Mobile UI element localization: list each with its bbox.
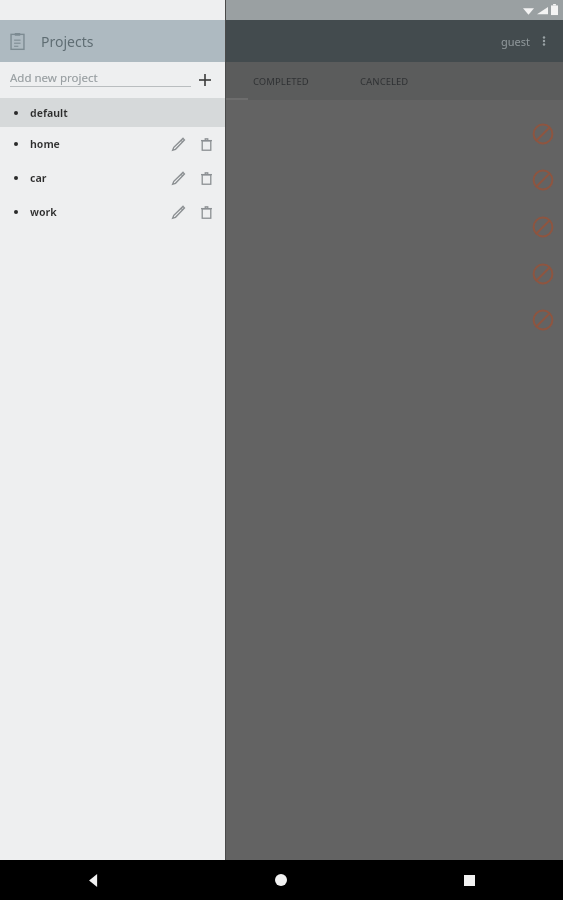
button[interactable]: Delete work	[193, 199, 219, 225]
button[interactable]: Send	[521, 855, 555, 889]
button[interactable]: Edit car	[165, 165, 191, 191]
button[interactable]: Delete home	[193, 131, 219, 157]
button[interactable]: Cancel task	[532, 123, 554, 145]
button[interactable]: work	[0, 195, 225, 229]
button[interactable]: CANCELED	[334, 62, 434, 100]
staticText: work	[30, 205, 57, 219]
staticText: COMPLETED	[253, 75, 309, 88]
button[interactable]: home	[0, 127, 225, 161]
button[interactable]: COMPLETED	[228, 62, 334, 100]
staticText: guest	[501, 34, 531, 49]
button[interactable]: Add project	[191, 66, 219, 94]
button[interactable]: Back	[0, 860, 187, 900]
staticText: Add new project	[10, 70, 98, 86]
staticText: Projects	[41, 32, 94, 51]
button[interactable]: More options	[531, 28, 557, 54]
button[interactable]: Cancel task	[532, 216, 554, 238]
button[interactable]: default	[0, 98, 225, 127]
staticText: default	[30, 106, 68, 120]
staticText: car	[30, 171, 47, 185]
button[interactable]: Recent apps	[375, 860, 563, 900]
button[interactable]: car	[0, 161, 225, 195]
button[interactable]: Cancel task	[532, 309, 554, 331]
button[interactable]: Home	[187, 860, 375, 900]
button[interactable]: Cancel task	[532, 169, 554, 191]
staticText: CANCELED	[360, 75, 409, 88]
button[interactable]: Cancel task	[532, 263, 554, 285]
button[interactable]: Edit home	[165, 131, 191, 157]
staticText: home	[30, 137, 60, 151]
button[interactable]: Projects	[0, 20, 225, 62]
button[interactable]: Edit work	[165, 199, 191, 225]
button[interactable]: Delete car	[193, 165, 219, 191]
